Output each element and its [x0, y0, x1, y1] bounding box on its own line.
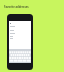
staticText: Favorite addresses: [4, 5, 29, 9]
